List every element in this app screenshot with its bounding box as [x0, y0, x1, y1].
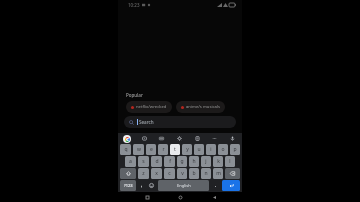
button[interactable]: v	[177, 168, 187, 179]
button[interactable]: p	[230, 144, 240, 155]
staticText: c	[168, 170, 171, 177]
button[interactable]: Emoji	[146, 180, 157, 191]
button[interactable]: b	[189, 168, 199, 179]
button[interactable]: English	[158, 180, 209, 191]
button[interactable]: Stickers	[140, 134, 149, 143]
staticText: u	[197, 146, 201, 153]
staticText: m	[216, 170, 221, 177]
button[interactable]: x	[151, 168, 162, 179]
button[interactable]: netflix/wrecked	[126, 101, 172, 113]
staticText: i	[210, 146, 212, 153]
staticText: a	[129, 158, 132, 165]
button[interactable]: Key	[120, 168, 136, 179]
button[interactable]: Recent apps	[142, 192, 152, 202]
button[interactable]: Comma	[137, 180, 146, 191]
button[interactable]: n	[201, 168, 211, 179]
button[interactable]: u	[194, 144, 204, 155]
staticText: o	[221, 146, 225, 153]
button[interactable]: Clipboard	[193, 134, 202, 143]
button[interactable]: z	[138, 168, 149, 179]
button[interactable]: j	[201, 156, 211, 167]
staticText: ?123	[124, 183, 133, 188]
button[interactable]: m	[213, 168, 223, 179]
button[interactable]: o	[218, 144, 228, 155]
button[interactable]: Settings	[175, 134, 184, 143]
staticText: anime/s musicals	[186, 104, 220, 110]
staticText: t	[174, 146, 176, 153]
staticText: y	[186, 146, 189, 153]
staticText: l	[229, 158, 231, 165]
button[interactable]: h	[189, 156, 199, 167]
staticText: netflix/wrecked	[136, 104, 167, 110]
button[interactable]: More options	[210, 134, 219, 143]
staticText: q	[124, 146, 128, 153]
button[interactable]: Key	[225, 168, 240, 179]
button[interactable]: d	[151, 156, 162, 167]
staticText: b	[192, 170, 196, 177]
button[interactable]: g	[177, 156, 187, 167]
staticText: d	[155, 158, 159, 165]
staticText: h	[192, 158, 196, 165]
staticText: k	[217, 158, 220, 165]
staticText: f	[169, 158, 171, 165]
staticText: s	[142, 158, 145, 165]
staticText: e	[150, 146, 153, 153]
staticText: w	[137, 146, 141, 153]
button[interactable]: r	[158, 144, 168, 155]
staticText: z	[142, 170, 145, 177]
button[interactable]: Back	[209, 192, 219, 202]
staticText: Popular	[126, 92, 143, 98]
staticText: .	[215, 182, 217, 189]
button[interactable]: q	[120, 144, 131, 155]
staticText: ,	[141, 182, 143, 189]
button[interactable]: Home	[175, 192, 185, 202]
staticText: n	[204, 170, 208, 177]
staticText: g	[180, 158, 184, 165]
staticText: 10:23	[128, 2, 140, 8]
button[interactable]: t	[170, 144, 180, 155]
button[interactable]: Search	[124, 116, 236, 128]
staticText: v	[181, 170, 184, 177]
button[interactable]: s	[138, 156, 149, 167]
button[interactable]: Google search	[123, 135, 131, 143]
button[interactable]: k	[213, 156, 223, 167]
staticText: Search	[139, 119, 154, 125]
button[interactable]: Voice input	[228, 134, 237, 143]
button[interactable]: anime/s musicals	[176, 101, 225, 113]
button[interactable]: c	[164, 168, 175, 179]
staticText: x	[155, 170, 158, 177]
button[interactable]: ?123	[120, 180, 136, 191]
staticText: p	[233, 146, 237, 153]
button[interactable]: a	[125, 156, 136, 167]
staticText: r	[162, 146, 165, 153]
button[interactable]: i	[206, 144, 216, 155]
button[interactable]: Enter	[222, 180, 240, 191]
staticText: English	[177, 183, 191, 188]
button[interactable]: Period	[210, 180, 221, 191]
staticText: j	[205, 158, 207, 165]
button[interactable]: l	[225, 156, 235, 167]
button[interactable]: w	[133, 144, 144, 155]
button[interactable]: GIF	[157, 134, 166, 143]
button[interactable]: e	[146, 144, 156, 155]
button[interactable]: f	[164, 156, 175, 167]
button[interactable]: y	[182, 144, 192, 155]
